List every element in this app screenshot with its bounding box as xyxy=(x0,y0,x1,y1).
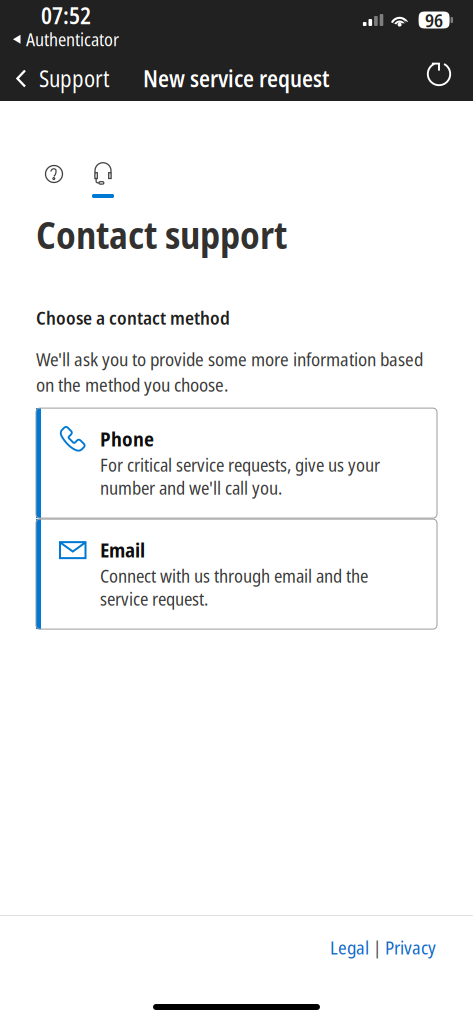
staticText: Email xyxy=(100,536,145,563)
staticText: Contact support xyxy=(36,209,287,260)
staticText: New service request xyxy=(143,63,330,94)
staticText: Choose a contact method xyxy=(36,305,230,330)
button[interactable]: Help xyxy=(36,162,72,198)
staticText: number and we'll call you. xyxy=(100,475,282,500)
staticText: Phone xyxy=(100,425,154,452)
staticText: Connect with us through email and the xyxy=(100,563,368,588)
staticText: 96 xyxy=(425,7,443,33)
staticText: Legal xyxy=(330,935,369,960)
button[interactable]: Privacy xyxy=(385,935,436,960)
button[interactable]: Refresh xyxy=(426,56,473,101)
staticText: Privacy xyxy=(385,935,436,960)
button[interactable]: Support xyxy=(85,162,121,198)
staticText: Authenticator xyxy=(26,27,119,51)
button[interactable]: Legal xyxy=(330,935,369,960)
staticText: 07:52 xyxy=(41,0,91,31)
button[interactable]: Support xyxy=(0,56,118,101)
staticText: on the method you choose. xyxy=(36,372,228,397)
staticText: service request. xyxy=(100,586,208,611)
button[interactable]: Email xyxy=(36,519,437,629)
button[interactable]: Phone xyxy=(36,408,437,518)
staticText: Support xyxy=(39,63,110,94)
staticText: For critical service requests, give us y… xyxy=(100,452,380,477)
staticText: We'll ask you to provide some more infor… xyxy=(36,346,423,372)
staticText: | xyxy=(369,935,385,960)
